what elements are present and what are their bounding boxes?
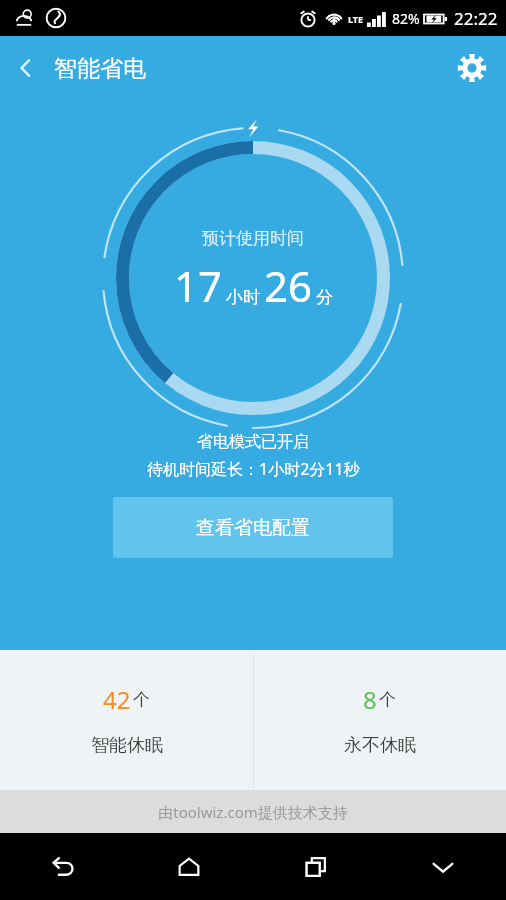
staticText: 智能省电 (54, 54, 146, 83)
staticText: 小时 (226, 287, 260, 308)
staticText: 待机时间延长：1小时2分11秒 (147, 458, 360, 480)
staticText: 永不休眠 (344, 734, 416, 757)
staticText: 预计使用时间 (202, 228, 304, 249)
button[interactable]: Back (0, 833, 126, 900)
staticText: 个 (379, 689, 396, 710)
staticText: 82% (392, 9, 420, 28)
button[interactable]: Home (126, 833, 252, 900)
staticText: 由toolwiz.com提供技术支持 (158, 802, 348, 822)
button[interactable]: 查看省电配置 (113, 497, 393, 558)
button[interactable]: Recent apps (252, 833, 379, 900)
staticText: LTE (348, 13, 364, 25)
staticText: 26 (264, 257, 313, 314)
button[interactable]: Hide navigation bar (379, 833, 506, 900)
button[interactable]: 8 (253, 650, 506, 790)
staticText: 22:22 (454, 7, 498, 30)
staticText: 个 (133, 689, 150, 710)
staticText: 8 (363, 683, 377, 716)
staticText: 查看省电配置 (196, 516, 310, 540)
staticText: 分 (316, 287, 333, 308)
button[interactable]: 42 (0, 650, 253, 790)
staticText: 省电模式已开启 (197, 432, 309, 452)
button[interactable]: Back (0, 42, 52, 94)
staticText: 智能休眠 (91, 734, 163, 757)
staticText: 17 (174, 257, 223, 314)
staticText: 42 (103, 683, 131, 716)
button[interactable]: Settings (448, 44, 496, 92)
